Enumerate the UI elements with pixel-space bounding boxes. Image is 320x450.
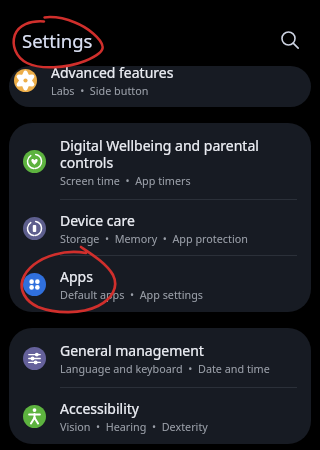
button[interactable]: Advanced features — [0, 60, 320, 101]
button[interactable]: Accessibility — [9, 388, 311, 444]
staticText: Default apps • App settings — [60, 287, 204, 302]
staticText: Accessibility — [60, 399, 139, 418]
staticText: Advanced features — [51, 63, 174, 82]
staticText: Vision • Hearing • Dexterity — [60, 419, 208, 434]
staticText: Storage • Memory • App protection — [60, 231, 248, 246]
staticText: Labs • Side button — [51, 83, 149, 98]
staticText: Digital Wellbeing and parental controls — [60, 136, 259, 172]
button[interactable]: Digital Wellbeing and parental controls — [9, 123, 311, 200]
staticText: General management — [60, 341, 204, 360]
staticText: Screen time • App timers — [60, 173, 191, 188]
staticText: Device care — [60, 211, 135, 230]
staticText: Language and keyboard • Date and time — [60, 361, 270, 376]
button[interactable]: Apps — [9, 256, 311, 312]
staticText: Settings — [22, 28, 93, 53]
staticText: Apps — [60, 267, 93, 286]
button[interactable]: Device care — [9, 200, 311, 256]
button[interactable]: Search — [281, 31, 307, 57]
button[interactable]: General management — [9, 328, 311, 388]
